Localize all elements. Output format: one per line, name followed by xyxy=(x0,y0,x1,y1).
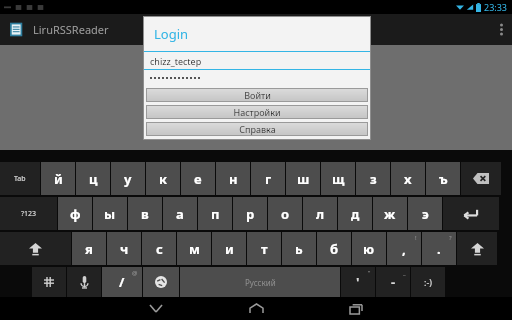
button[interactable]: @ xyxy=(102,267,142,297)
staticText: г xyxy=(265,170,272,188)
staticText: ы xyxy=(104,205,116,223)
staticText: 23:33 xyxy=(484,1,508,13)
staticText: о xyxy=(281,205,290,223)
staticText: й xyxy=(54,170,63,188)
button[interactable]: ч xyxy=(107,232,141,265)
button[interactable]: р xyxy=(233,197,267,230)
button[interactable]: Home xyxy=(236,297,276,320)
button[interactable]: Настройки xyxy=(146,105,368,119)
button[interactable]: м xyxy=(177,232,211,265)
button[interactable]: б xyxy=(317,232,351,265)
button[interactable]: More options xyxy=(490,14,512,45)
button[interactable]: Settings xyxy=(32,267,66,297)
staticText: _ xyxy=(403,269,406,277)
button[interactable]: Tab xyxy=(0,162,40,195)
button[interactable]: с xyxy=(142,232,176,265)
staticText: у xyxy=(124,170,132,188)
staticText: б xyxy=(330,240,339,258)
staticText: и xyxy=(225,240,234,258)
staticText: " xyxy=(368,269,371,277)
staticText: д xyxy=(351,205,360,223)
button[interactable]: в xyxy=(128,197,162,230)
button[interactable]: ь xyxy=(282,232,316,265)
button[interactable]: Войти xyxy=(146,88,368,102)
button[interactable]: л xyxy=(303,197,337,230)
button[interactable]: а xyxy=(163,197,197,230)
staticText: я xyxy=(85,240,93,258)
button[interactable]: Recent apps xyxy=(336,297,376,320)
button[interactable]: ы xyxy=(93,197,127,230)
button[interactable]: е xyxy=(181,162,215,195)
staticText: ш xyxy=(297,170,310,188)
staticText: а xyxy=(176,205,184,223)
staticText: х xyxy=(404,170,412,188)
staticText: Русский xyxy=(245,277,276,288)
button[interactable]: п xyxy=(198,197,232,230)
button[interactable]: г xyxy=(251,162,285,195)
staticText: т xyxy=(261,240,268,258)
button[interactable]: Shift xyxy=(457,232,497,265)
button[interactable]: ж xyxy=(373,197,407,230)
button[interactable]: ъ xyxy=(426,162,460,195)
button[interactable]: з xyxy=(356,162,390,195)
button[interactable]: и xyxy=(212,232,246,265)
button[interactable]: щ xyxy=(321,162,355,195)
button[interactable]: н xyxy=(216,162,250,195)
button[interactable]: о xyxy=(268,197,302,230)
button[interactable]: Справка xyxy=(146,122,368,136)
button[interactable]: к xyxy=(146,162,180,195)
staticText: Настройки xyxy=(233,106,281,118)
button[interactable]: ? xyxy=(422,232,456,265)
button[interactable]: Hide keyboard xyxy=(136,297,176,320)
button[interactable]: у xyxy=(111,162,145,195)
staticText: л xyxy=(316,205,325,223)
button[interactable]: Backspace xyxy=(461,162,501,195)
staticText: м xyxy=(189,240,200,258)
button[interactable]: й xyxy=(41,162,75,195)
button[interactable]: ?123 xyxy=(0,197,57,230)
staticText: :-) xyxy=(424,276,433,288)
staticText: Login xyxy=(154,25,189,43)
staticText: Tab xyxy=(14,174,26,184)
staticText: - xyxy=(391,273,396,291)
staticText: э xyxy=(422,205,429,223)
button[interactable]: " xyxy=(341,267,375,297)
button[interactable]: Shift xyxy=(0,232,71,265)
button[interactable]: ф xyxy=(58,197,92,230)
staticText: к xyxy=(159,170,168,188)
button[interactable]: т xyxy=(247,232,281,265)
staticText: ф xyxy=(70,205,81,223)
staticText: ? xyxy=(449,234,452,242)
button[interactable]: Русский xyxy=(180,267,340,297)
button[interactable]: ю xyxy=(352,232,386,265)
button[interactable]: я xyxy=(72,232,106,265)
staticText: р xyxy=(246,205,255,223)
staticText: с xyxy=(156,240,163,258)
staticText: Справка xyxy=(239,123,276,135)
staticText: ч xyxy=(120,240,129,258)
button[interactable]: Change language xyxy=(143,267,179,297)
staticText: Войти xyxy=(244,89,271,101)
staticText: щ xyxy=(332,170,345,188)
staticText: / xyxy=(119,273,125,291)
button[interactable]: ! xyxy=(387,232,421,265)
staticText: в xyxy=(141,205,149,223)
staticText: , xyxy=(402,240,406,258)
staticText: з xyxy=(370,170,377,188)
staticText: ' xyxy=(356,273,360,291)
button[interactable]: Enter xyxy=(443,197,499,230)
button[interactable] xyxy=(143,70,371,86)
button[interactable]: э xyxy=(408,197,442,230)
button[interactable]: :-) xyxy=(411,267,445,297)
button[interactable]: Voice input xyxy=(67,267,101,297)
button[interactable]: _ xyxy=(376,267,410,297)
staticText: ц xyxy=(89,170,98,188)
staticText: @ xyxy=(132,269,138,277)
button[interactable]: х xyxy=(391,162,425,195)
staticText: . xyxy=(437,240,441,258)
button[interactable]: ш xyxy=(286,162,320,195)
button[interactable]: ц xyxy=(76,162,110,195)
staticText: LiruRSSReader xyxy=(33,22,109,37)
button[interactable]: chizz_tectep xyxy=(143,52,371,69)
button[interactable]: д xyxy=(338,197,372,230)
